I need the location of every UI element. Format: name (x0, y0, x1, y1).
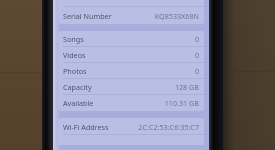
staticText: 0 (194, 34, 199, 44)
button[interactable]: Wi-Fi Address (58, 118, 204, 135)
button[interactable]: Capacity (58, 79, 204, 95)
button[interactable]: Available (58, 95, 204, 111)
staticText: KQ8533X68N (154, 11, 199, 21)
staticText: 128 GB (174, 82, 199, 92)
staticText: Wi-Fi Address (63, 122, 109, 132)
button[interactable]: Videos (58, 47, 204, 63)
staticText: 110.31 GB (164, 98, 199, 108)
staticText: Serial Number (63, 11, 112, 21)
button[interactable]: Songs (58, 31, 204, 47)
button[interactable]: Serial Number (58, 7, 204, 24)
staticText: 0 (194, 50, 199, 60)
staticText: 2C:C2:53:C6:35:C7 (138, 122, 199, 132)
staticText: Videos (63, 50, 86, 60)
staticText: Available (63, 98, 94, 108)
staticText: Capacity (63, 82, 92, 92)
button[interactable]: Photos (58, 63, 204, 79)
staticText: Photos (63, 66, 87, 76)
staticText: Songs (63, 34, 84, 44)
staticText: 0 (194, 66, 199, 76)
button[interactable] (58, 0, 204, 7)
